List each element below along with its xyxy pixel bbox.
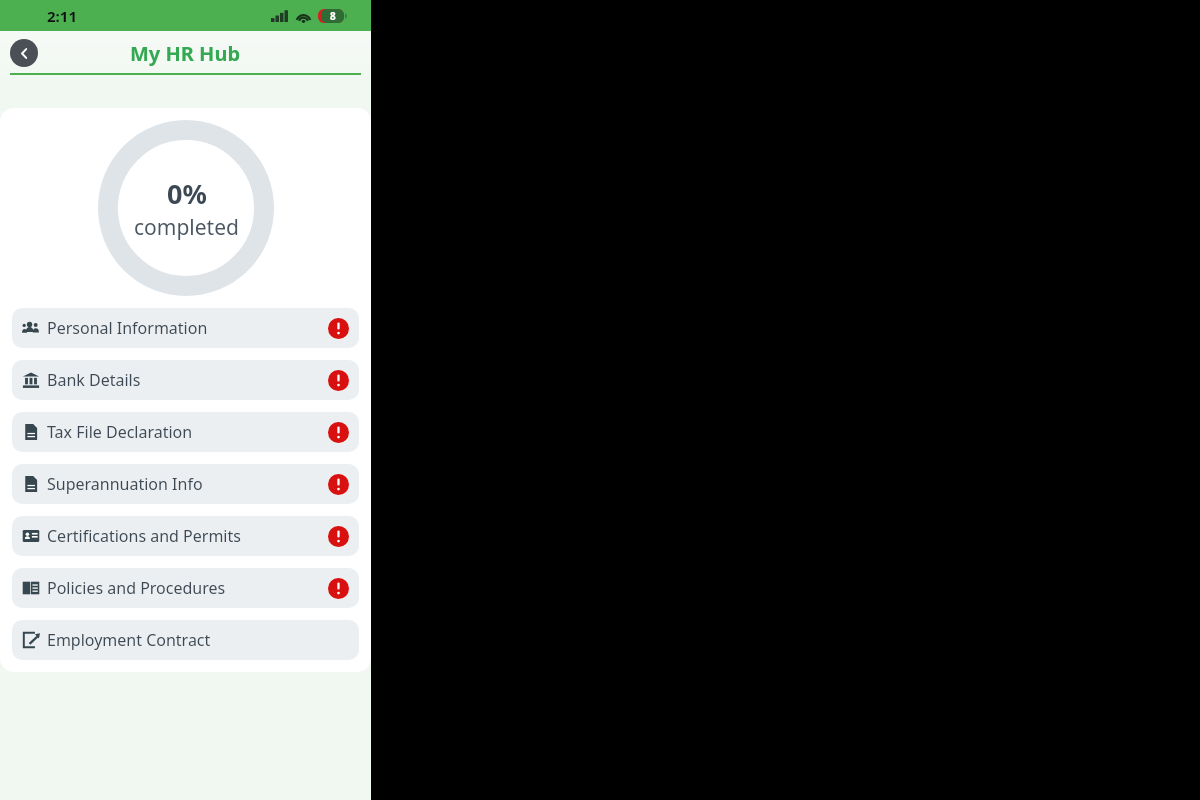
staticText: 2:11: [47, 6, 77, 26]
staticText: 8: [330, 9, 336, 23]
staticText: Superannuation Info: [47, 473, 203, 495]
staticText: Certifications and Permits: [47, 525, 241, 547]
button[interactable]: Certifications and Permits: [12, 516, 359, 556]
staticText: Tax File Declaration: [47, 421, 193, 443]
button[interactable]: Tax File Declaration: [12, 412, 359, 452]
staticText: My HR Hub: [130, 40, 241, 67]
staticText: Employment Contract: [47, 629, 211, 651]
button[interactable]: Superannuation Info: [12, 464, 359, 504]
staticText: Personal Information: [47, 317, 208, 339]
staticText: 0%: [167, 175, 207, 212]
button[interactable]: Employment Contract: [12, 620, 359, 660]
staticText: Bank Details: [47, 369, 141, 391]
button[interactable]: Bank Details: [12, 360, 359, 400]
button[interactable]: Policies and Procedures: [12, 568, 359, 608]
button[interactable]: Back: [10, 39, 38, 67]
button[interactable]: Personal Information: [12, 308, 359, 348]
staticText: Policies and Procedures: [47, 577, 226, 599]
staticText: completed: [134, 213, 239, 242]
